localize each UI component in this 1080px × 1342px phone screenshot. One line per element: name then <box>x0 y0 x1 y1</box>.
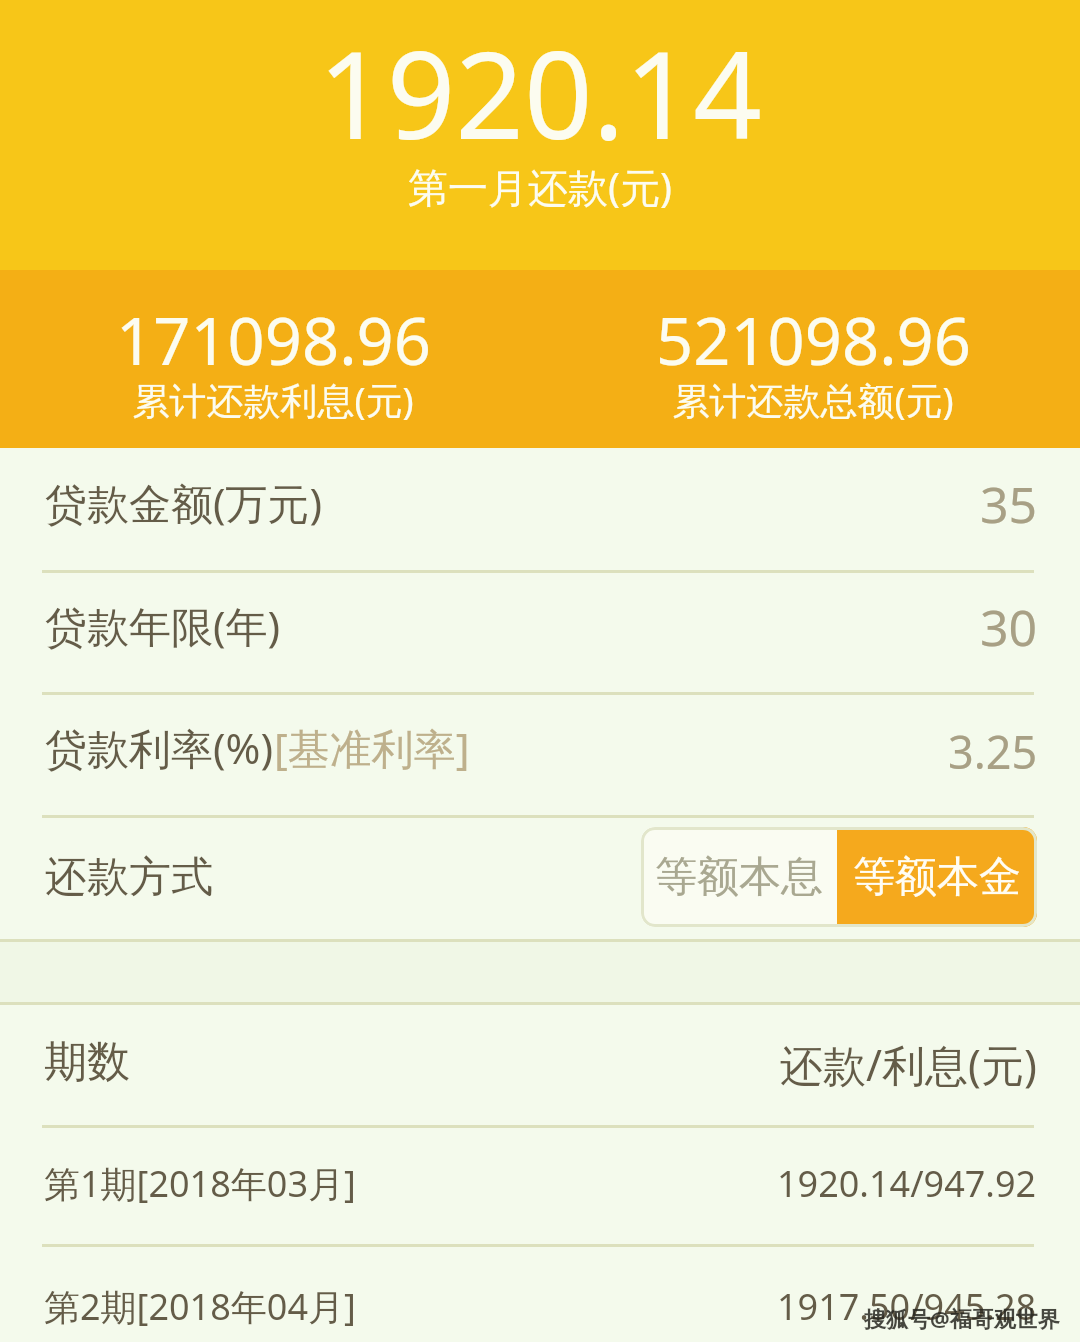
staticText: 累计还款利息(元) <box>132 374 414 425</box>
staticText: 3.25 <box>948 721 1038 782</box>
staticText: 第1期[2018年03月] <box>44 1159 356 1208</box>
button[interactable]: 贷款金额(万元) <box>0 448 1080 573</box>
staticText: 贷款金额(万元) <box>45 474 323 531</box>
button[interactable]: 期数 <box>0 1005 1080 1128</box>
button[interactable]: 171098.96 <box>0 270 540 448</box>
staticText: 期数 <box>44 1035 130 1089</box>
staticText: 第2期[2018年04月] <box>44 1282 356 1331</box>
staticText: 搜狐号@福哥观世界 <box>864 1303 1060 1333</box>
staticText: 171098.96 <box>116 296 431 385</box>
button[interactable]: 贷款利率(%) <box>0 695 1080 818</box>
staticText: 贷款利率(%) <box>45 719 274 776</box>
staticText: 等额本金 <box>853 851 1021 904</box>
staticText: 第一月还款(元) <box>408 159 672 214</box>
button[interactable]: 第2期[2018年04月] <box>0 1247 1080 1342</box>
staticText: 1920.14/947.92 <box>777 1159 1037 1208</box>
button[interactable]: 贷款年限(年) <box>0 573 1080 695</box>
staticText: 累计还款总额(元) <box>672 374 954 425</box>
staticText: 35 <box>980 470 1038 538</box>
staticText: 1920.14 <box>318 11 762 174</box>
staticText: 等额本息 <box>655 851 823 904</box>
button[interactable]: 等额本息 <box>641 827 837 927</box>
staticText: [基准利率] <box>274 719 470 776</box>
staticText: 还款方式 <box>45 851 213 904</box>
staticText: 还款/利息(元) <box>780 1035 1037 1094</box>
staticText: 30 <box>980 593 1038 661</box>
button[interactable]: 等额本金 <box>837 827 1037 927</box>
staticText: 521098.96 <box>656 296 971 385</box>
button[interactable]: 521098.96 <box>540 270 1080 448</box>
button[interactable]: 第1期[2018年03月] <box>0 1128 1080 1247</box>
staticText: 贷款年限(年) <box>45 597 281 654</box>
staticText: 1917.50/945.28 <box>777 1282 1037 1331</box>
